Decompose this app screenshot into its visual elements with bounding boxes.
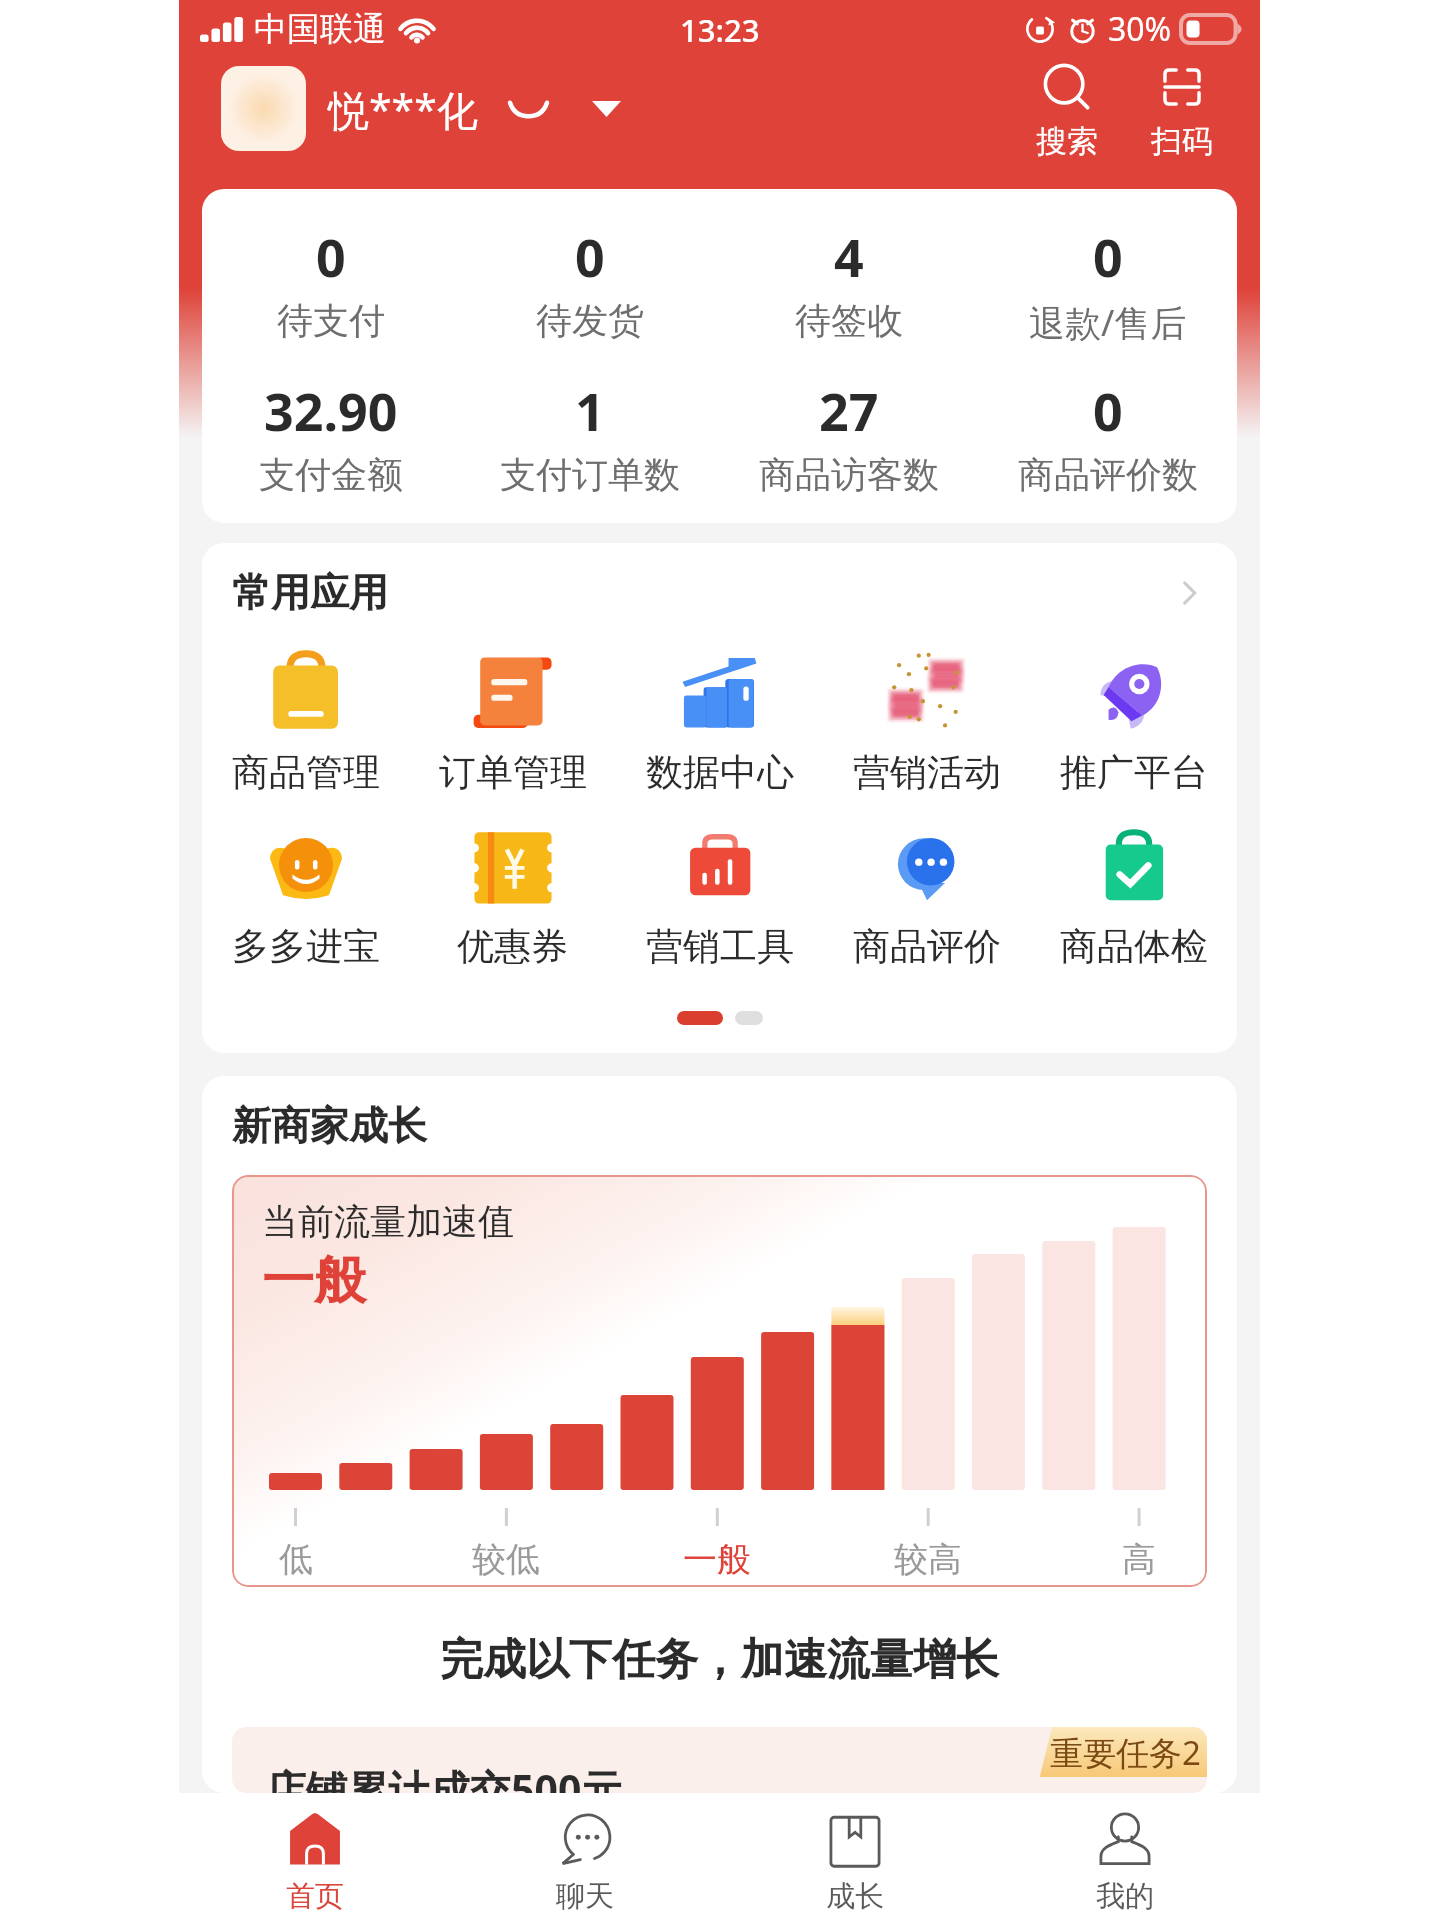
button[interactable]: 1	[460, 375, 719, 497]
staticText: 待签收	[795, 298, 903, 343]
button[interactable]: 重要任务2	[232, 1727, 1207, 1793]
staticText: 新商家成长	[232, 1101, 427, 1150]
button[interactable]: 扫码	[1144, 60, 1220, 161]
staticText: 0	[1093, 375, 1123, 446]
staticText: 订单管理	[439, 749, 587, 796]
staticText: 待发货	[536, 298, 644, 343]
staticText: 1	[575, 375, 605, 446]
staticText: 退款/售后	[1029, 298, 1187, 347]
staticText: 待支付	[277, 298, 385, 343]
staticText: 支付订单数	[500, 452, 680, 497]
button[interactable]: 悦***化	[328, 81, 621, 137]
button[interactable]: 0	[978, 375, 1237, 497]
button[interactable]: 0	[460, 221, 719, 343]
staticText: 首页	[286, 1878, 344, 1915]
staticText: 商品访客数	[759, 452, 939, 497]
staticText: 成长	[826, 1878, 884, 1915]
staticText: 商品体检	[1060, 923, 1208, 970]
button[interactable]: 搜索	[1029, 60, 1105, 161]
staticText: 32.90	[264, 375, 398, 446]
staticText: 低	[241, 1538, 351, 1581]
staticText: 高	[1084, 1538, 1194, 1581]
button[interactable]: 订单管理	[409, 650, 616, 796]
staticText: 优惠券	[457, 923, 568, 970]
button[interactable]: Shop avatar	[221, 66, 306, 151]
button[interactable]: 27	[719, 375, 978, 497]
button[interactable]: 成长	[720, 1793, 990, 1920]
button[interactable]: 优惠券	[409, 824, 616, 970]
button[interactable]: 营销工具	[616, 824, 823, 970]
staticText: 我的	[1096, 1878, 1154, 1915]
staticText: 较低	[451, 1538, 561, 1581]
staticText: 较高	[873, 1538, 983, 1581]
button[interactable]: 0	[978, 221, 1237, 347]
staticText: 中国联通	[254, 8, 386, 50]
staticText: 一般	[262, 1248, 366, 1314]
staticText: 完成以下任务，加速流量增长	[202, 1633, 1237, 1687]
staticText: 多多进宝	[232, 923, 380, 970]
button[interactable]: 4	[719, 221, 978, 343]
staticText: 商品管理	[232, 749, 380, 796]
staticText: 商品评价数	[1018, 452, 1198, 497]
button[interactable]: 商品体检	[1030, 824, 1237, 970]
staticText: 30%	[1108, 7, 1172, 51]
button[interactable]: 营销活动	[823, 650, 1030, 796]
staticText: 支付金额	[259, 452, 403, 497]
staticText: 店铺累计成交500元	[265, 1761, 623, 1793]
staticText: 重要任务2	[1050, 1730, 1201, 1775]
staticText: 一般	[662, 1538, 772, 1581]
button[interactable]: 聊天	[450, 1793, 720, 1920]
staticText: 0	[1093, 221, 1123, 292]
staticText: 推广平台	[1060, 749, 1208, 796]
button[interactable]: 商品管理	[202, 650, 409, 796]
staticText: 数据中心	[646, 749, 794, 796]
staticText: 营销活动	[853, 749, 1001, 796]
staticText: 悦***化	[328, 81, 478, 137]
staticText: 营销工具	[646, 923, 794, 970]
button[interactable]: 推广平台	[1030, 650, 1237, 796]
staticText: 商品评价	[853, 923, 1001, 970]
staticText: 扫码	[1151, 122, 1213, 161]
staticText: 常用应用	[232, 568, 388, 617]
staticText: 27	[819, 375, 879, 446]
button[interactable]: 商品评价	[823, 824, 1030, 970]
button[interactable]: 多多进宝	[202, 824, 409, 970]
button[interactable]: More apps	[1167, 571, 1211, 615]
button[interactable]: 我的	[990, 1793, 1260, 1920]
staticText: 0	[316, 221, 346, 292]
button[interactable]: 首页	[179, 1793, 450, 1920]
staticText: 当前流量加速值	[262, 1199, 514, 1244]
staticText: 4	[834, 221, 864, 292]
staticText: 聊天	[556, 1878, 614, 1915]
button[interactable]: 32.90	[202, 375, 460, 497]
button[interactable]: 0	[202, 221, 460, 343]
staticText: 13:23	[680, 9, 760, 51]
staticText: 搜索	[1036, 122, 1098, 161]
button[interactable]: 数据中心	[616, 650, 823, 796]
staticText: 0	[575, 221, 605, 292]
